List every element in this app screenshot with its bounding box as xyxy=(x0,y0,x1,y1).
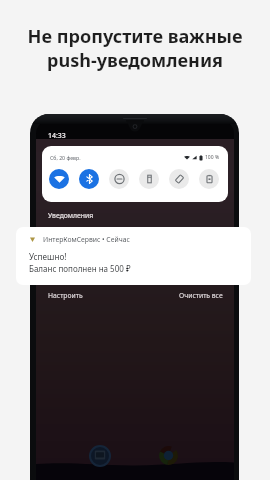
button[interactable]: Flashlight xyxy=(139,169,159,189)
button[interactable]: Chrome xyxy=(159,446,178,465)
staticText: Настроить xyxy=(48,291,83,300)
button[interactable]: Очистить все xyxy=(179,291,223,300)
staticText: Очистить все xyxy=(179,291,223,300)
button[interactable]: Wi-Fi xyxy=(49,169,69,189)
button[interactable]: Do not disturb xyxy=(109,169,129,189)
staticText: Успешно! xyxy=(29,251,67,262)
button[interactable]: Bluetooth xyxy=(79,169,99,189)
button[interactable]: Настроить xyxy=(48,291,83,300)
staticText: Уведомления xyxy=(48,211,94,220)
button[interactable]: Battery saver xyxy=(199,169,219,189)
staticText: Сб, 20 февр. xyxy=(50,154,81,161)
button[interactable]: Auto rotate xyxy=(169,169,189,189)
staticText: 14:33 xyxy=(48,131,66,140)
staticText: Баланс пополнен на 500 ₽ xyxy=(29,263,131,274)
staticText: 100 % xyxy=(205,154,220,161)
button[interactable]: ИнтерКомСервис • Сейчас xyxy=(16,227,251,285)
staticText: Не пропустите важные push-уведомления xyxy=(27,24,243,72)
staticText: ИнтерКомСервис • Сейчас xyxy=(43,235,130,244)
button[interactable]: Files xyxy=(90,446,110,466)
